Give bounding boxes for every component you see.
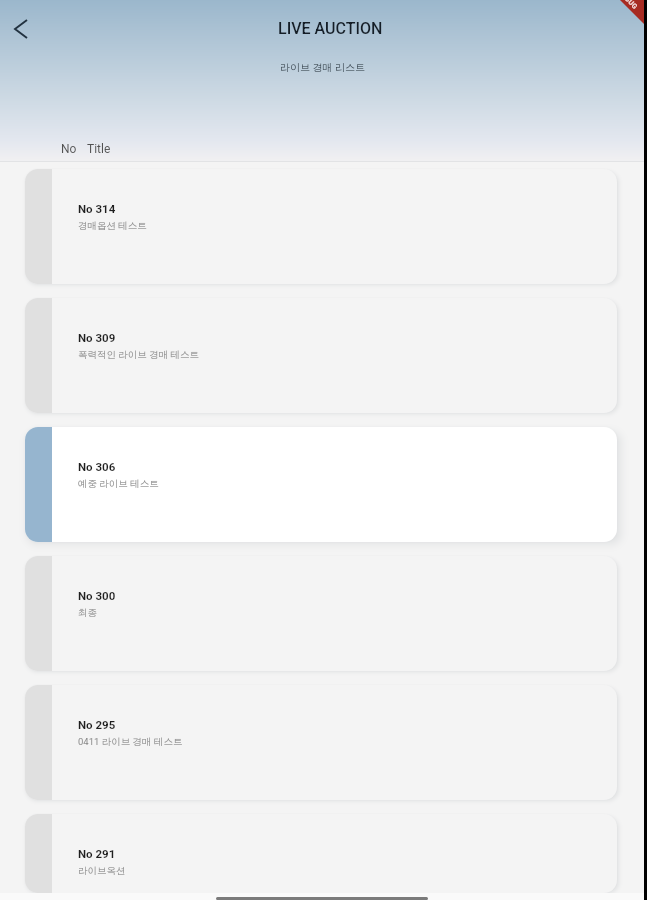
staticText: Title [87,142,111,156]
button[interactable]: Back [0,8,42,50]
staticText: LIVE AUCTION [278,19,383,38]
button[interactable]: No 300 [25,556,617,671]
staticText: No 295 [78,718,116,731]
staticText: 라이브 경매 리스트 [280,61,365,74]
staticText: 경매옵션 테스트 [78,220,147,232]
staticText: DEBUG [617,0,639,11]
staticText: No 291 [78,847,116,860]
button[interactable]: No 291 [25,814,617,893]
staticText: No 309 [78,331,116,344]
button[interactable]: No 295 [25,685,617,800]
staticText: 0411 라이브 경매 테스트 [78,736,183,748]
staticText: No [61,142,77,156]
staticText: 라이브옥션 [78,865,126,877]
staticText: 최종 [78,607,97,619]
button[interactable]: No 309 [25,298,617,413]
staticText: No 300 [78,589,116,602]
button[interactable]: No 306 [25,427,617,542]
staticText: No 306 [78,460,116,473]
button[interactable]: No 314 [25,169,617,284]
staticText: 폭력적인 라이브 경매 테스트 [78,349,200,361]
staticText: 예중 라이브 테스트 [78,478,159,490]
staticText: No 314 [78,202,116,215]
